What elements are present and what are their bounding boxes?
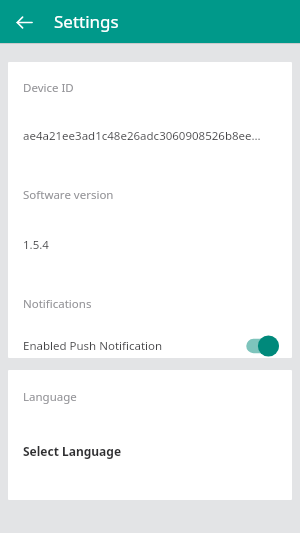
staticText: Notifications <box>23 296 92 312</box>
staticText: Device ID <box>23 80 74 96</box>
staticText: Software version <box>23 187 114 203</box>
staticText: Language <box>23 389 77 405</box>
staticText: Enabled Push Notification <box>23 338 163 354</box>
button[interactable]: Enabled Push Notification <box>8 334 292 358</box>
button[interactable]: 1.5.4 <box>8 237 292 253</box>
button[interactable]: Back <box>9 7 39 37</box>
staticText: Settings <box>54 10 119 33</box>
staticText: ae4a21ee3ad1c48e26adc3060908526b8ee… <box>23 128 261 144</box>
button[interactable]: ae4a21ee3ad1c48e26adc3060908526b8ee… <box>8 128 292 144</box>
button[interactable]: Select Language <box>8 443 292 459</box>
staticText: 1.5.4 <box>23 237 49 253</box>
button[interactable]: Enabled Push Notification toggle <box>237 334 279 358</box>
staticText: Select Language <box>23 443 122 459</box>
